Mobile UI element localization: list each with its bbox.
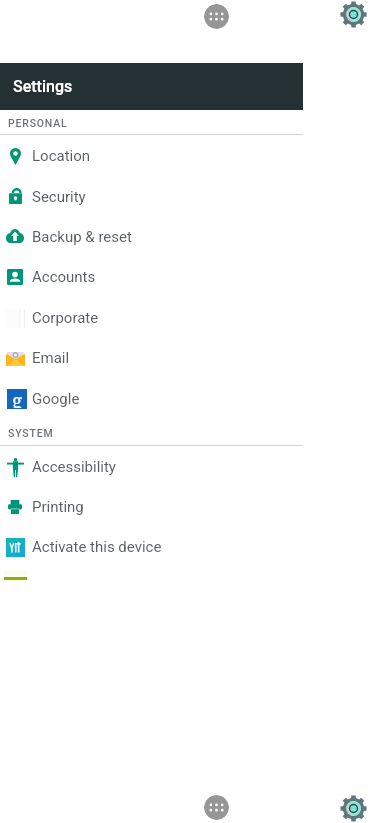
button[interactable]: Accessibility [0, 447, 303, 487]
staticText: Email [32, 349, 70, 367]
staticText: SYSTEM [8, 427, 54, 439]
button[interactable]: All apps [204, 4, 229, 29]
button[interactable]: Accounts [0, 257, 303, 297]
staticText: Security [32, 188, 86, 206]
button[interactable]: Backup & reset [0, 217, 303, 257]
staticText: Activate this device [32, 538, 162, 556]
staticText: Settings [13, 77, 73, 96]
button[interactable]: Activate this device [0, 527, 303, 567]
button[interactable]: Settings [340, 795, 367, 822]
button[interactable]: All apps [204, 795, 229, 820]
staticText: Backup & reset [32, 228, 132, 246]
button[interactable]: Corporate [0, 298, 303, 338]
button[interactable]: g [0, 379, 303, 419]
button[interactable]: Settings [340, 1, 367, 28]
staticText: Accounts [32, 268, 96, 286]
staticText: Accessibility [32, 458, 116, 476]
staticText: Printing [32, 498, 84, 516]
button[interactable]: Location [0, 136, 303, 176]
staticText: Google [32, 390, 80, 408]
button[interactable]: Security [0, 177, 303, 217]
button[interactable]: Email [0, 338, 303, 378]
staticText: g [12, 388, 23, 408]
button[interactable]: Printing [0, 487, 303, 527]
staticText: Location [32, 147, 91, 165]
staticText: PERSONAL [8, 117, 68, 129]
staticText: Corporate [32, 309, 99, 327]
